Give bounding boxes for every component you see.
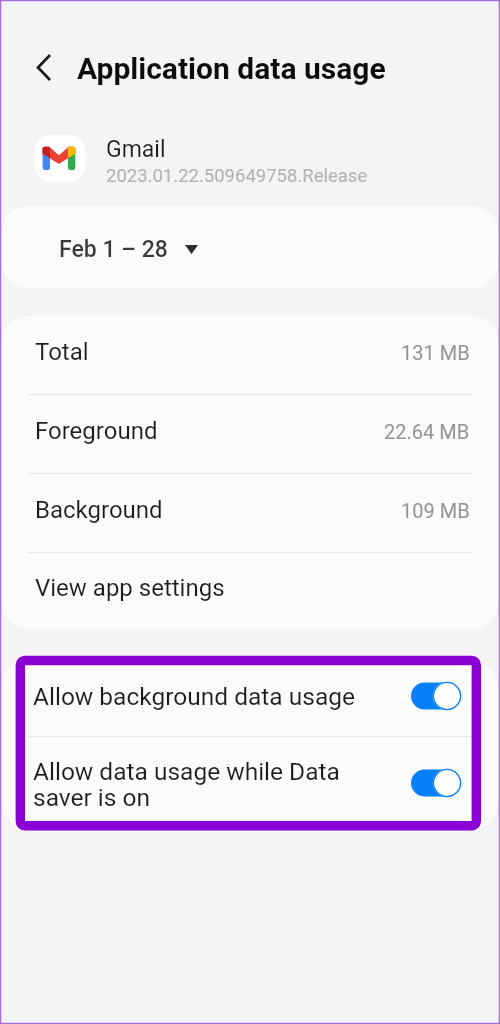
- staticText: Allow background data usage: [33, 682, 355, 711]
- staticText: Feb 1 – 28: [59, 236, 168, 263]
- button[interactable]: Allow data usage while Data saver is on: [2, 737, 498, 829]
- staticText: 109 MB: [401, 499, 470, 522]
- button[interactable]: Foreground: [2, 395, 498, 473]
- button[interactable]: View app settings: [2, 553, 498, 629]
- button[interactable]: Toggle: [411, 768, 460, 798]
- button[interactable]: Gmail: [0, 123, 500, 199]
- button[interactable]: Feb 1 – 28: [2, 206, 498, 288]
- staticText: Foreground: [35, 417, 158, 445]
- staticText: Gmail: [106, 136, 166, 163]
- button[interactable]: Background: [2, 474, 498, 552]
- staticText: View app settings: [35, 574, 225, 602]
- button[interactable]: Allow background data usage: [2, 661, 498, 736]
- button[interactable]: Toggle: [411, 681, 460, 711]
- button[interactable]: Navigate back: [20, 43, 68, 91]
- staticText: Allow data usage while Data saver is on: [33, 757, 340, 812]
- staticText: Background: [35, 496, 163, 524]
- staticText: Total: [35, 338, 89, 366]
- staticText: 2023.01.22.509649758.Release: [106, 165, 368, 187]
- staticText: 22.64 MB: [384, 420, 470, 443]
- button[interactable]: Total: [2, 316, 498, 394]
- staticText: Application data usage: [77, 51, 386, 86]
- staticText: 131 MB: [401, 341, 470, 364]
